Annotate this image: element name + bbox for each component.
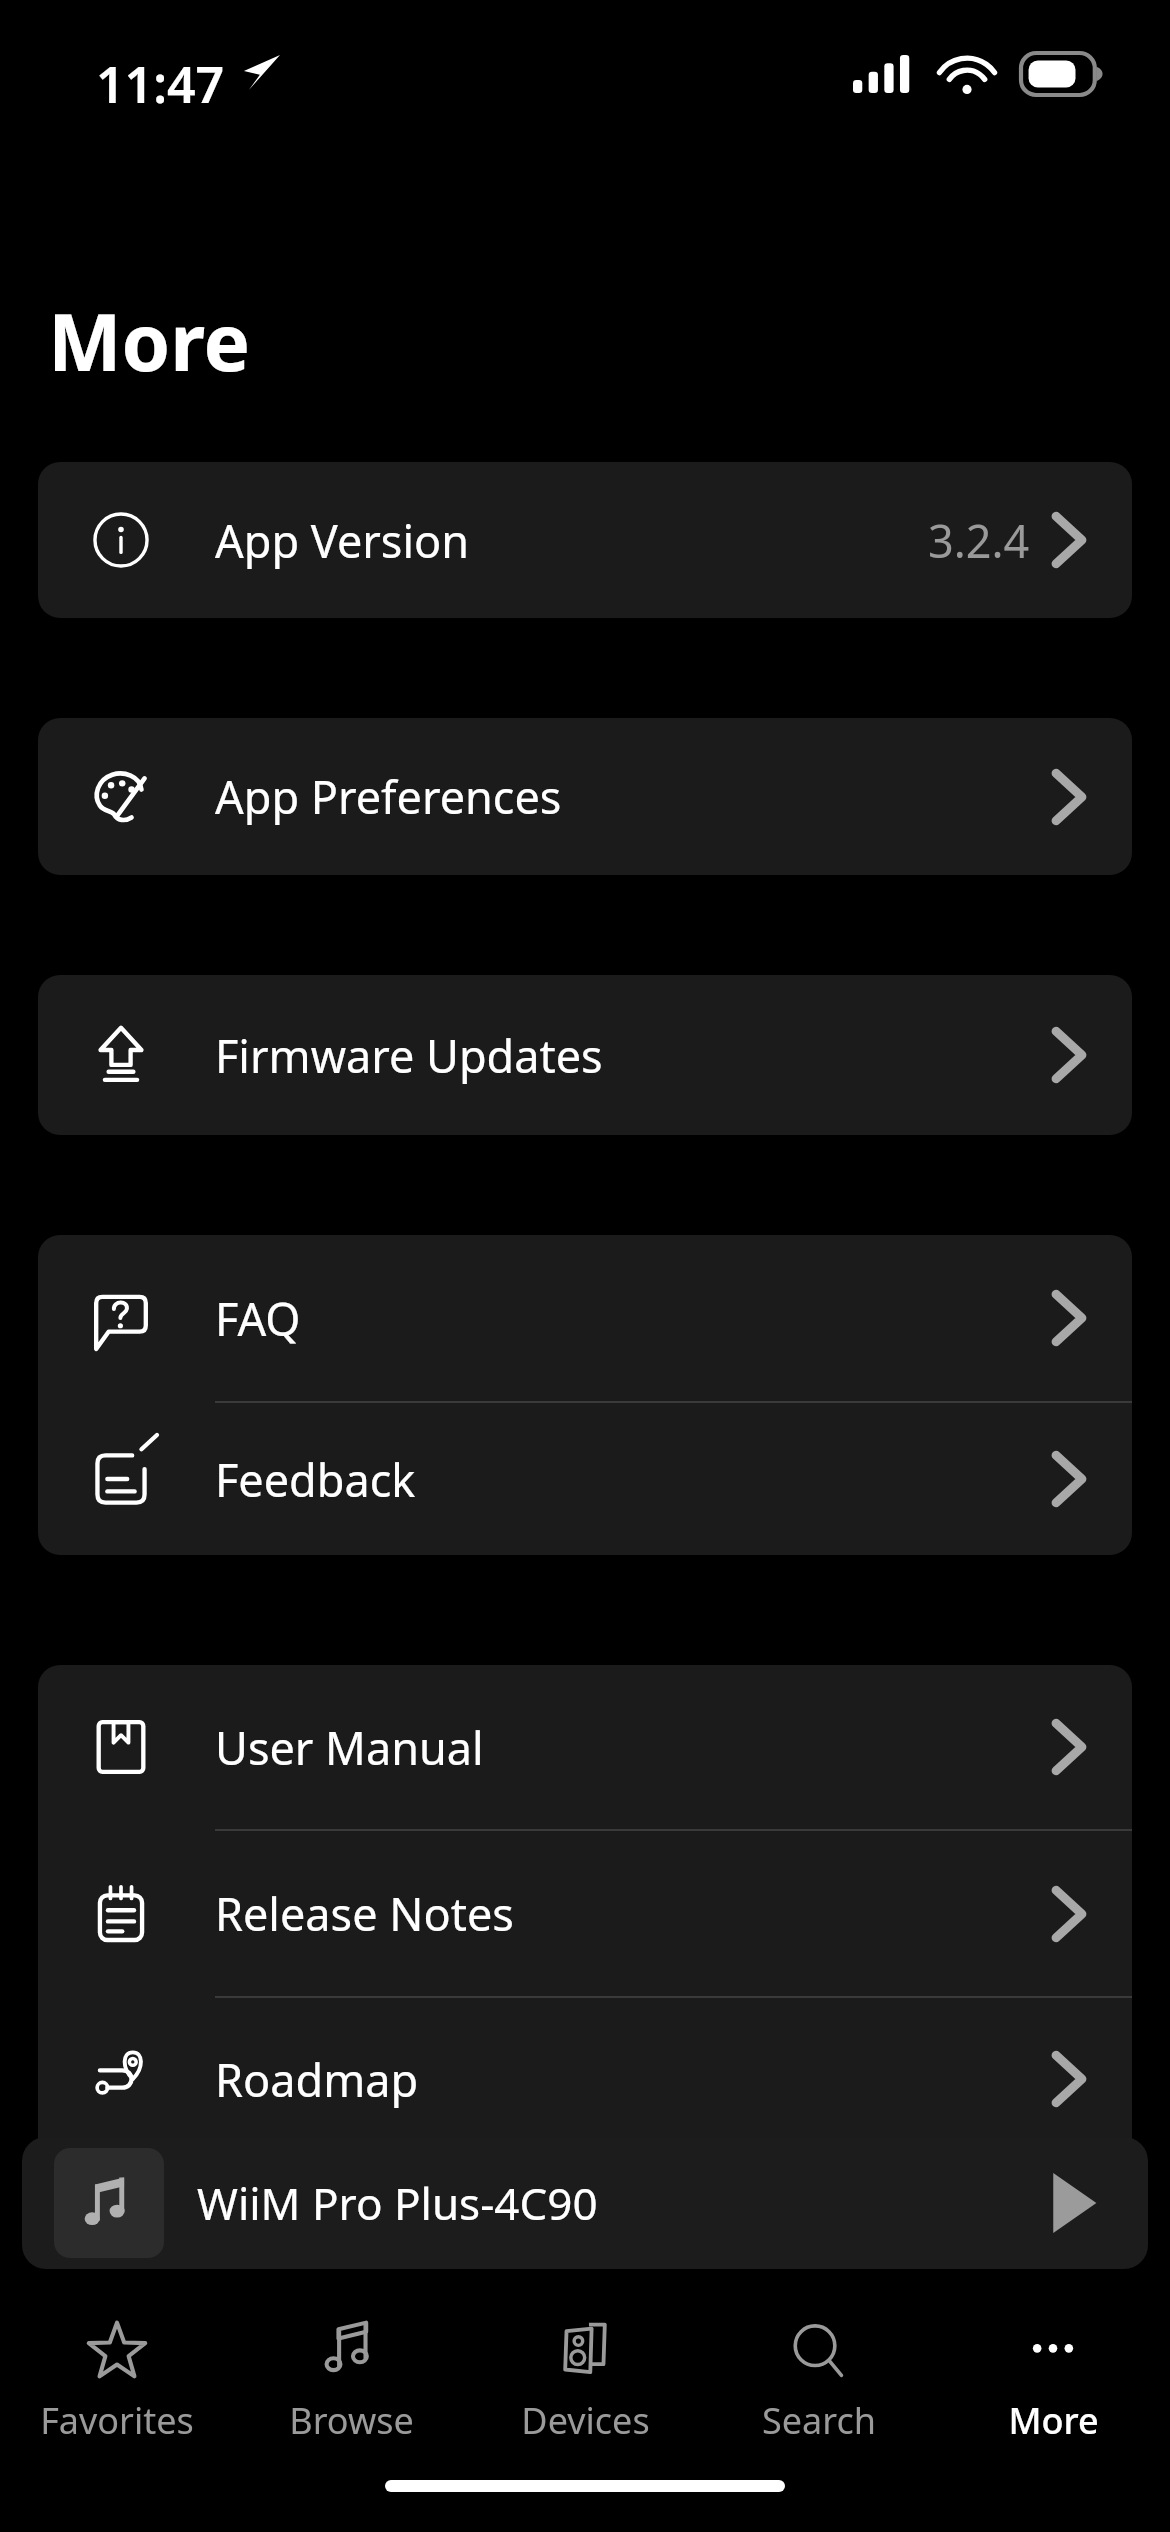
button[interactable]: App Preferences xyxy=(38,718,1132,875)
button[interactable]: FAQ xyxy=(38,1235,1132,1401)
button[interactable]: WiiM Pro Plus-4C90 xyxy=(22,2137,1148,2269)
button[interactable]: Play xyxy=(1028,2158,1118,2248)
button[interactable]: Feedback xyxy=(38,1403,1132,1555)
staticText: Feedback xyxy=(215,1449,416,1510)
staticText: Release Notes xyxy=(215,1883,514,1944)
button[interactable]: Release Notes xyxy=(38,1831,1132,1996)
staticText: WiiM Pro Plus-4C90 xyxy=(197,2173,598,2233)
staticText: Favorites xyxy=(40,2396,194,2445)
staticText: More xyxy=(1008,2396,1099,2445)
button[interactable]: App Version xyxy=(38,462,1132,618)
staticText: Search xyxy=(762,2396,876,2445)
button[interactable]: Firmware Updates xyxy=(38,975,1132,1135)
staticText: Firmware Updates xyxy=(215,1025,603,1086)
staticText: FAQ xyxy=(215,1288,301,1349)
button[interactable]: Devices xyxy=(468,2300,702,2480)
button[interactable]: Browse xyxy=(234,2300,468,2480)
staticText: Devices xyxy=(521,2396,650,2445)
staticText: Browse xyxy=(289,2396,414,2445)
button[interactable]: Search xyxy=(702,2300,936,2480)
staticText: App Preferences xyxy=(215,766,562,827)
staticText: User Manual xyxy=(215,1717,484,1778)
staticText: App Version xyxy=(215,510,470,571)
button[interactable]: More xyxy=(936,2300,1170,2480)
button[interactable]: Favorites xyxy=(0,2300,234,2480)
staticText: 11:47 xyxy=(96,50,225,118)
staticText: Roadmap xyxy=(215,2049,419,2110)
button[interactable]: Roadmap xyxy=(38,1998,1132,2160)
button[interactable]: User Manual xyxy=(38,1665,1132,1829)
staticText: 3.2.4 xyxy=(928,510,1030,571)
staticText: More xyxy=(48,288,251,394)
